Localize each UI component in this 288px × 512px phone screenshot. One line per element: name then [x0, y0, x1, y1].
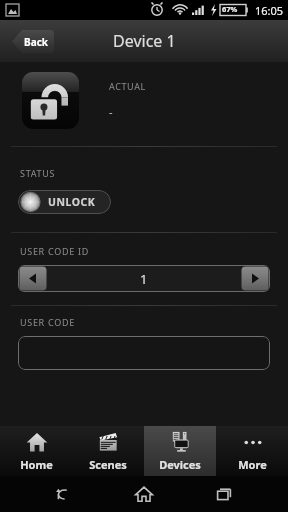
staticText: USER CODE: [20, 316, 75, 328]
staticText: 1: [140, 270, 148, 288]
staticText: -: [109, 104, 113, 119]
button[interactable]: Back: [48, 478, 80, 510]
staticText: STATUS: [20, 167, 56, 179]
staticText: Devices: [159, 457, 201, 472]
staticText: Device 1: [113, 30, 176, 52]
button[interactable]: Devices: [144, 426, 216, 476]
button[interactable]: UNLOCK: [18, 190, 111, 214]
button[interactable]: Scenes: [72, 426, 144, 476]
button[interactable]: Home: [128, 478, 160, 510]
staticText: More: [238, 457, 267, 472]
staticText: 67%: [222, 4, 238, 14]
button[interactable]: More: [216, 426, 288, 476]
staticText: UNLOCK: [48, 195, 96, 209]
staticText: USER CODE ID: [20, 245, 89, 257]
button[interactable]: Home: [0, 426, 72, 476]
button[interactable]: Decrease: [18, 265, 48, 292]
button[interactable]: Lock state: [22, 72, 79, 129]
button[interactable]: Increase: [240, 265, 270, 292]
staticText: ACTUAL: [109, 80, 146, 92]
button[interactable]: Back: [12, 30, 54, 53]
staticText: 16:05: [255, 3, 284, 18]
staticText: Scenes: [89, 457, 127, 472]
button[interactable]: Recents: [208, 478, 240, 510]
staticText: Home: [20, 457, 53, 472]
button[interactable]: User code input: [18, 336, 270, 370]
staticText: Back: [24, 35, 48, 49]
